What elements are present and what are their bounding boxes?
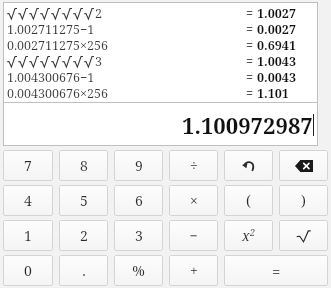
staticText: 0.0043 xyxy=(257,69,296,85)
button[interactable]: 5 xyxy=(59,185,108,216)
staticText: = xyxy=(272,261,281,281)
button[interactable]: 8 xyxy=(59,150,108,181)
button[interactable]: Backspace xyxy=(279,150,328,181)
staticText: 2 xyxy=(95,5,102,21)
staticText: 6 xyxy=(135,191,143,210)
staticText: 0 xyxy=(24,261,32,280)
staticText: 1 xyxy=(24,226,32,245)
staticText: = xyxy=(246,85,257,101)
staticText: 1.100972987 xyxy=(182,110,313,140)
staticText: 3 xyxy=(95,53,102,69)
staticText: 0.0027 xyxy=(257,21,296,37)
staticText: 3 xyxy=(135,226,143,245)
staticText: = xyxy=(246,21,257,37)
button[interactable]: ( xyxy=(224,185,273,216)
button[interactable]: 3 xyxy=(114,220,163,251)
button[interactable]: ÷ xyxy=(169,150,218,181)
staticText: 9 xyxy=(135,156,143,175)
staticText: = xyxy=(246,37,257,53)
staticText: = xyxy=(246,53,257,69)
staticText: 8 xyxy=(80,156,88,175)
staticText: 0.002711275×256 xyxy=(7,37,108,53)
button[interactable]: 6 xyxy=(114,185,163,216)
staticText: 4 xyxy=(24,191,32,210)
button[interactable]: Square root xyxy=(279,220,328,251)
staticText: x xyxy=(242,226,250,245)
staticText: 1.0043 xyxy=(257,53,296,69)
button[interactable]: 7 xyxy=(3,150,53,181)
staticText: = xyxy=(246,5,257,21)
staticText: + xyxy=(190,261,198,280)
button[interactable]: . xyxy=(59,255,108,286)
button[interactable]: − xyxy=(169,220,218,251)
staticText: 5 xyxy=(80,191,88,210)
button[interactable]: ) xyxy=(279,185,328,216)
staticText: 1.002711275−1 xyxy=(7,21,95,37)
button[interactable]: = xyxy=(224,255,328,286)
button[interactable]: Square xyxy=(224,220,273,251)
staticText: 1.101 xyxy=(257,85,289,101)
staticText: = xyxy=(246,69,257,85)
staticText: ÷ xyxy=(190,156,198,175)
staticText: % xyxy=(132,261,145,280)
staticText: 0.004300676×256 xyxy=(7,85,108,101)
staticText: 7 xyxy=(24,156,32,175)
staticText: ( xyxy=(246,191,251,210)
button[interactable]: 4 xyxy=(3,185,53,216)
button[interactable]: 1 xyxy=(3,220,53,251)
button[interactable]: + xyxy=(169,255,218,286)
button[interactable]: 0 xyxy=(3,255,53,286)
staticText: . xyxy=(82,261,86,280)
staticText: 1.0027 xyxy=(257,5,296,21)
staticText: 1.004300676−1 xyxy=(7,69,95,85)
button[interactable]: 9 xyxy=(114,150,163,181)
button[interactable]: × xyxy=(169,185,218,216)
button[interactable]: 2 xyxy=(59,220,108,251)
button[interactable]: % xyxy=(114,255,163,286)
staticText: − xyxy=(189,226,198,245)
staticText: 0.6941 xyxy=(257,37,296,53)
staticText: ) xyxy=(301,191,306,210)
staticText: 2 xyxy=(80,226,88,245)
staticText: × xyxy=(190,191,198,210)
staticText: 2 xyxy=(250,226,256,238)
button[interactable]: Undo xyxy=(224,150,273,181)
